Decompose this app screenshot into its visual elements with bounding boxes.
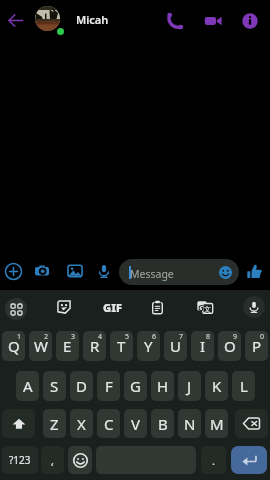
staticText: 1 bbox=[17, 332, 22, 342]
staticText: 5 bbox=[125, 332, 130, 342]
staticText: X bbox=[77, 414, 86, 434]
button[interactable]: Z bbox=[43, 409, 66, 438]
staticText: C bbox=[104, 414, 114, 434]
staticText: E bbox=[63, 336, 72, 356]
button[interactable]: GIF bbox=[100, 296, 124, 318]
button[interactable]: Gallery bbox=[64, 260, 86, 282]
button[interactable]: F bbox=[97, 371, 120, 401]
button[interactable]: Voice message bbox=[93, 260, 115, 282]
button[interactable]: Send a like bbox=[243, 260, 265, 282]
staticText: K bbox=[212, 376, 222, 396]
button[interactable]: T bbox=[110, 331, 133, 361]
button[interactable]: I bbox=[191, 331, 214, 361]
button[interactable]: Q bbox=[2, 331, 25, 361]
button[interactable]: Back bbox=[2, 7, 28, 33]
button[interactable]: X bbox=[70, 409, 93, 438]
staticText: 2 bbox=[44, 332, 49, 342]
staticText: F bbox=[105, 376, 113, 396]
staticText: G bbox=[130, 376, 141, 396]
button[interactable]: Camera bbox=[31, 260, 53, 282]
staticText: J bbox=[187, 376, 192, 396]
staticText: . bbox=[212, 453, 215, 468]
button[interactable]: Stickers bbox=[53, 296, 75, 318]
button[interactable]: Clipboard bbox=[146, 296, 168, 318]
button[interactable]: Symbols bbox=[2, 446, 38, 474]
button[interactable]: E bbox=[56, 331, 79, 361]
staticText: 8 bbox=[206, 332, 211, 342]
button[interactable]: Backspace bbox=[235, 409, 268, 438]
button[interactable]: Message bbox=[119, 259, 239, 285]
staticText: 7 bbox=[179, 332, 184, 342]
staticText: M bbox=[210, 414, 224, 434]
staticText: , bbox=[51, 453, 54, 468]
staticText: O bbox=[224, 336, 236, 356]
button[interactable]: Shift bbox=[2, 409, 35, 438]
staticText: H bbox=[157, 376, 169, 396]
button[interactable]: B bbox=[151, 409, 174, 438]
staticText: GIF bbox=[103, 300, 122, 315]
button[interactable]: C bbox=[97, 409, 120, 438]
staticText: T bbox=[117, 336, 126, 356]
staticText: G bbox=[198, 302, 204, 313]
staticText: 4 bbox=[98, 332, 103, 342]
button[interactable]: Comma bbox=[41, 446, 64, 474]
staticText: 9 bbox=[233, 332, 238, 342]
button[interactable]: More options bbox=[2, 260, 24, 282]
button[interactable]: Emoji bbox=[68, 446, 92, 474]
staticText: Y bbox=[144, 336, 153, 356]
button[interactable]: J bbox=[178, 371, 201, 401]
button[interactable]: Emoji bbox=[215, 262, 235, 282]
button[interactable]: G bbox=[124, 371, 147, 401]
button[interactable]: R bbox=[83, 331, 106, 361]
staticText: U bbox=[170, 336, 181, 356]
button[interactable]: Video call bbox=[200, 8, 226, 34]
staticText: P bbox=[252, 336, 262, 356]
button[interactable]: Translate bbox=[194, 296, 216, 318]
button[interactable]: P bbox=[245, 331, 268, 361]
staticText: V bbox=[131, 414, 141, 434]
button[interactable]: W bbox=[29, 331, 52, 361]
button[interactable]: A bbox=[16, 371, 39, 401]
staticText: 0 bbox=[260, 332, 265, 342]
staticText: Message bbox=[130, 267, 174, 281]
button[interactable]: M bbox=[205, 409, 228, 438]
staticText: 6 bbox=[152, 332, 157, 342]
staticText: L bbox=[240, 376, 248, 396]
button[interactable]: Y bbox=[137, 331, 160, 361]
button[interactable]: Enter bbox=[231, 446, 267, 474]
button[interactable]: Conversation details bbox=[237, 8, 263, 34]
button[interactable]: V bbox=[124, 409, 147, 438]
staticText: B bbox=[158, 414, 168, 434]
button[interactable]: D bbox=[70, 371, 93, 401]
staticText: S bbox=[50, 376, 59, 396]
staticText: 文 bbox=[204, 305, 211, 314]
staticText: D bbox=[76, 376, 87, 396]
staticText: Micah bbox=[76, 12, 109, 27]
staticText: 3 bbox=[71, 332, 76, 342]
button[interactable]: S bbox=[43, 371, 66, 401]
button[interactable]: Call bbox=[162, 8, 188, 34]
staticText: I bbox=[200, 336, 206, 356]
button[interactable]: U bbox=[164, 331, 187, 361]
staticText: W bbox=[34, 336, 48, 356]
button[interactable]: K bbox=[205, 371, 228, 401]
button[interactable]: O bbox=[218, 331, 241, 361]
staticText: Q bbox=[8, 336, 20, 356]
button[interactable]: Voice input bbox=[243, 296, 265, 318]
staticText: N bbox=[184, 414, 196, 434]
staticText: ?123 bbox=[9, 453, 31, 467]
button[interactable]: L bbox=[232, 371, 255, 401]
staticText: Z bbox=[50, 414, 59, 434]
staticText: A bbox=[23, 376, 33, 396]
button[interactable]: Period bbox=[201, 446, 226, 474]
button[interactable]: Open apps bbox=[5, 298, 27, 320]
button[interactable]: H bbox=[151, 371, 174, 401]
staticText: R bbox=[90, 336, 100, 356]
button[interactable]: N bbox=[178, 409, 201, 438]
